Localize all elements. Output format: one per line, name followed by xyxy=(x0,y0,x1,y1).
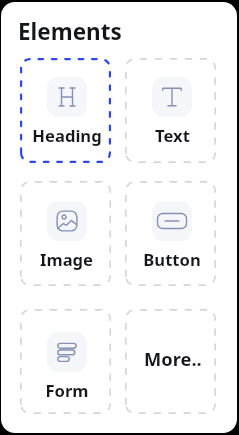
staticText: Heading xyxy=(32,124,102,147)
button[interactable]: Text xyxy=(125,58,216,163)
staticText: Text xyxy=(155,124,190,147)
button[interactable]: More.. xyxy=(125,309,216,414)
staticText: More.. xyxy=(144,346,202,371)
staticText: Image xyxy=(40,248,93,271)
button[interactable]: Form xyxy=(20,309,111,414)
staticText: Button xyxy=(143,248,201,271)
staticText: Elements xyxy=(18,16,122,47)
button[interactable]: Heading xyxy=(20,58,111,163)
button[interactable]: Image xyxy=(20,181,111,286)
button[interactable]: Button xyxy=(125,181,216,286)
staticText: Form xyxy=(45,379,89,402)
